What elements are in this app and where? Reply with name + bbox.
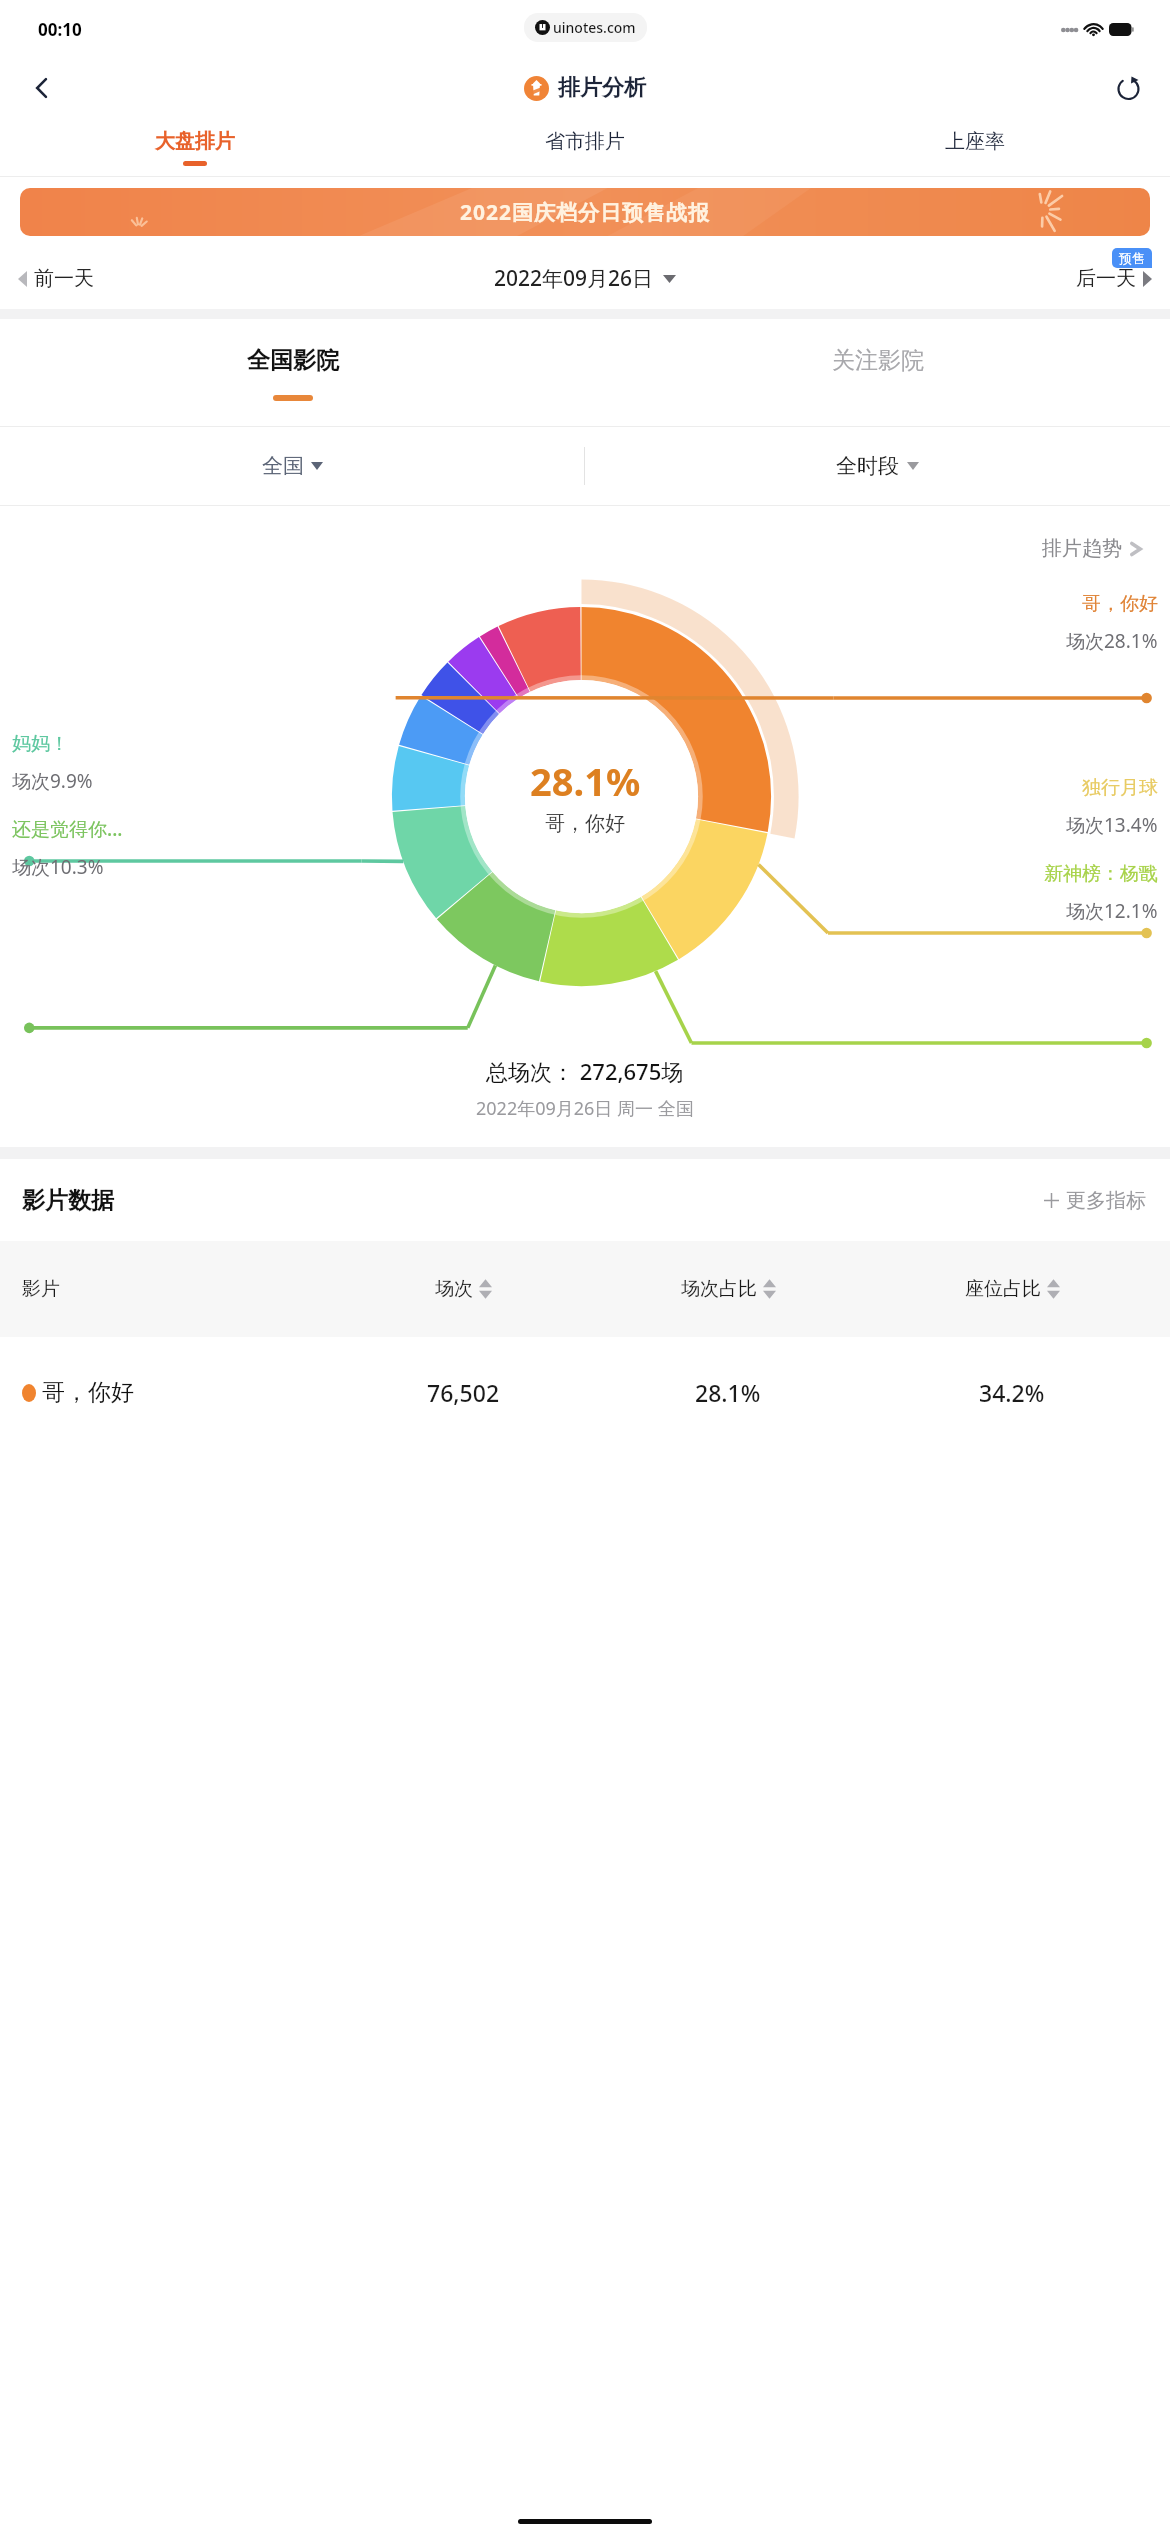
staticText: 更多指标: [1066, 1188, 1146, 1213]
staticText: 34.2%: [979, 1377, 1045, 1408]
staticText: 影片: [22, 1277, 60, 1301]
staticText: 28.1%: [530, 755, 641, 807]
button[interactable]: 全时段: [585, 427, 1170, 505]
staticText: 预售: [1119, 250, 1145, 266]
staticText: 影片数据: [22, 1186, 114, 1215]
staticText: 2022国庆档分日预售战报: [460, 198, 711, 227]
button[interactable]: 哥，你好: [0, 1337, 1170, 1447]
staticText: 妈妈！: [12, 732, 69, 756]
button[interactable]: 后一天: [1076, 266, 1152, 291]
staticText: 全时段: [836, 453, 899, 479]
button[interactable]: Share: [1104, 64, 1152, 112]
staticText: 还是觉得你...: [12, 816, 123, 842]
staticText: 省市排片: [545, 129, 625, 154]
button[interactable]: 关注影院: [585, 319, 1170, 427]
button[interactable]: 省市排片: [390, 118, 780, 176]
staticText: 哥，你好: [42, 1378, 134, 1407]
staticText: 场次28.1%: [1066, 628, 1158, 654]
staticText: 上座率: [945, 129, 1005, 154]
staticText: 大盘排片: [155, 129, 235, 154]
staticText: 76,502: [427, 1377, 500, 1408]
staticText: 场次占比: [681, 1277, 757, 1301]
staticText: 28.1%: [695, 1377, 761, 1408]
staticText: 场次9.9%: [12, 768, 93, 794]
staticText: 场次10.3%: [12, 854, 104, 880]
button[interactable]: 前一天: [18, 266, 94, 291]
button[interactable]: 全国影院: [0, 319, 585, 427]
staticText: 全国影院: [247, 346, 339, 375]
staticText: 独行月球: [1082, 776, 1158, 800]
button[interactable]: 全国: [0, 427, 584, 505]
staticText: 场次: [435, 1277, 473, 1301]
button[interactable]: 座位占比: [870, 1277, 1154, 1301]
staticText: uinotes.com: [553, 18, 636, 37]
staticText: 排片分析: [558, 74, 646, 102]
button[interactable]: 更多指标: [1040, 1184, 1150, 1217]
staticText: 新神榜：杨戬: [1044, 862, 1158, 886]
button[interactable]: 场次: [340, 1277, 586, 1301]
staticText: 2022年09月26日 周一 全国: [476, 1096, 694, 1121]
staticText: 后一天: [1076, 266, 1136, 291]
button[interactable]: 上座率: [780, 118, 1170, 176]
button[interactable]: 2022年09月26日: [494, 264, 676, 293]
button[interactable]: 场次占比: [586, 1277, 870, 1301]
staticText: 哥，你好: [1082, 592, 1158, 616]
button[interactable]: 2022国庆档分日预售战报: [20, 188, 1150, 236]
staticText: 2022年09月26日: [494, 264, 654, 293]
staticText: 前一天: [34, 266, 94, 291]
staticText: 全国: [262, 453, 304, 479]
staticText: 场次13.4%: [1066, 812, 1158, 838]
button[interactable]: 大盘排片: [0, 118, 390, 176]
staticText: 哥，你好: [545, 811, 625, 836]
button[interactable]: 排片趋势: [1036, 530, 1148, 567]
staticText: 00:10: [38, 18, 82, 41]
staticText: 关注影院: [832, 346, 924, 375]
staticText: 总场次： 272,675场: [486, 1056, 684, 1086]
button[interactable]: Back: [18, 64, 66, 112]
staticText: 座位占比: [965, 1277, 1041, 1301]
staticText: 排片趋势: [1042, 536, 1122, 561]
staticText: 场次12.1%: [1066, 898, 1158, 924]
